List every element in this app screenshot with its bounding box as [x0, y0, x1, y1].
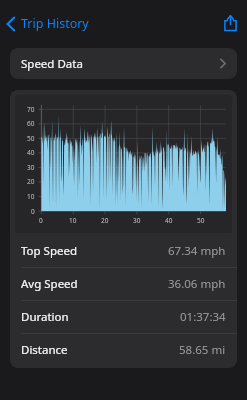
staticText: 0: [31, 207, 35, 216]
staticText: Top Speed: [21, 243, 78, 259]
staticText: 70: [27, 105, 35, 114]
button[interactable]: Speed Data: [10, 48, 237, 79]
staticText: 30: [133, 216, 141, 225]
staticText: 20: [27, 177, 35, 186]
staticText: 40: [27, 148, 35, 157]
staticText: Speed Data: [21, 56, 83, 72]
button[interactable]: Top Speed: [10, 235, 237, 267]
staticText: 67.34 mph: [168, 243, 226, 259]
button[interactable]: Distance: [10, 334, 237, 366]
staticText: Avg Speed: [21, 276, 78, 292]
staticText: 58.65 mi: [179, 342, 226, 358]
staticText: 01:37:34: [180, 309, 226, 325]
button[interactable]: Avg Speed: [10, 268, 237, 300]
staticText: 20: [101, 216, 109, 225]
staticText: 40: [165, 216, 173, 225]
staticText: 60: [27, 119, 35, 128]
button[interactable]: Share: [214, 12, 247, 34]
staticText: 30: [27, 163, 35, 172]
staticText: 10: [27, 192, 35, 201]
button[interactable]: Duration: [10, 301, 237, 333]
staticText: 36.06 mph: [168, 276, 226, 292]
staticText: 50: [27, 134, 35, 143]
staticText: Trip History: [21, 15, 89, 32]
staticText: Distance: [21, 342, 68, 358]
staticText: Duration: [21, 309, 69, 325]
staticText: 50: [197, 216, 205, 225]
staticText: 0: [39, 216, 43, 225]
button[interactable]: Back to Trip History: [0, 12, 97, 35]
staticText: 10: [69, 216, 77, 225]
